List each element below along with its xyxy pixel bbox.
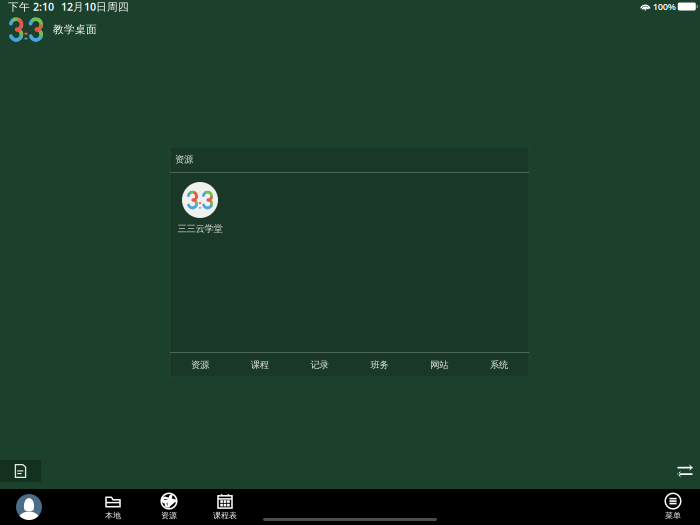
staticText: 资源 <box>191 359 209 371</box>
button[interactable]: 网站 <box>409 353 469 377</box>
button[interactable]: 三三云学堂 <box>170 182 230 234</box>
staticText: 100% <box>653 0 676 13</box>
button[interactable]: 课程 <box>230 353 290 377</box>
button[interactable]: 课程表 <box>197 489 253 525</box>
button[interactable]: 系统 <box>469 353 529 377</box>
button[interactable]: 本地 <box>85 489 141 525</box>
staticText: 三三云学堂 <box>177 223 222 234</box>
staticText: 下午 2:10 <box>8 0 54 14</box>
staticText: 菜单 <box>665 511 681 520</box>
staticText: 网站 <box>430 359 448 371</box>
button[interactable]: 班务 <box>349 353 409 377</box>
button[interactable]: 记录 <box>290 353 349 377</box>
staticText: 系统 <box>490 359 508 371</box>
button[interactable]: Profile <box>0 489 58 525</box>
staticText: 本地 <box>105 511 121 520</box>
staticText: 课程 <box>251 359 269 371</box>
button[interactable]: Swap screens <box>674 460 696 482</box>
staticText: 班务 <box>370 359 388 371</box>
button[interactable]: 资源 <box>141 489 197 525</box>
staticText: 课程表 <box>213 511 237 520</box>
staticText: 12月10日周四 <box>61 0 129 14</box>
staticText: 资源 <box>161 511 177 520</box>
button[interactable]: 资源 <box>170 353 230 377</box>
staticText: 记录 <box>311 359 329 371</box>
staticText: 教学桌面 <box>53 23 97 36</box>
button[interactable]: 菜单 <box>645 489 700 525</box>
button[interactable]: Notes <box>0 460 41 482</box>
staticText: 资源 <box>175 154 193 165</box>
